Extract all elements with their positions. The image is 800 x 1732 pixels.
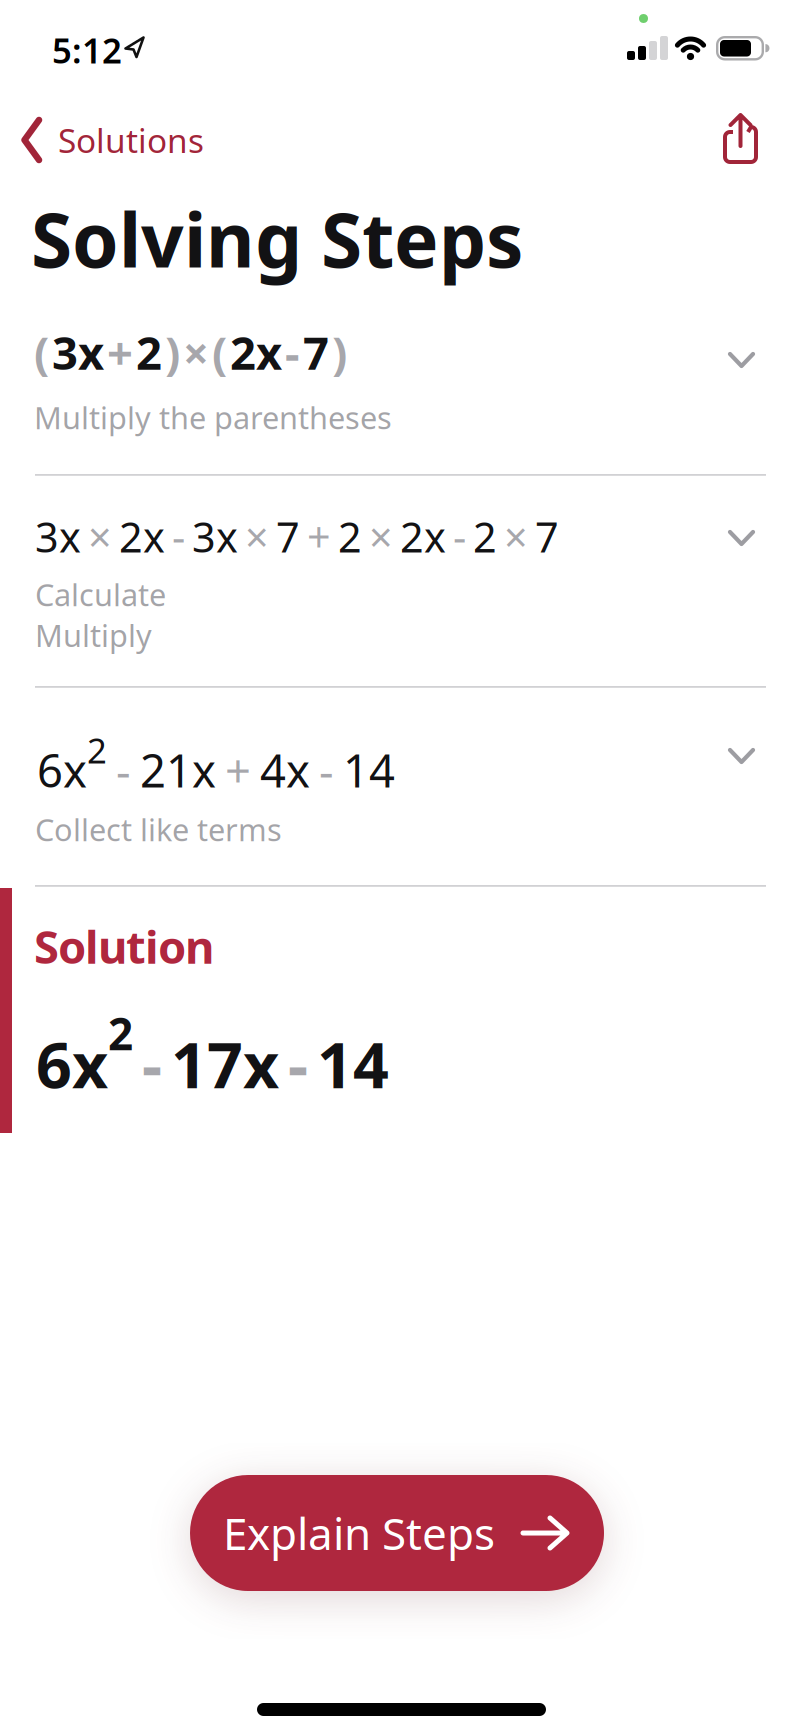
staticText: 21x <box>140 740 216 800</box>
staticText: 3x <box>52 322 104 382</box>
button[interactable]: Back to Solutions <box>21 117 204 163</box>
staticText: - <box>142 1022 162 1106</box>
button[interactable]: Expand step <box>728 352 755 368</box>
staticText: - <box>288 1022 308 1106</box>
button[interactable]: Explain Steps <box>190 1475 604 1591</box>
button[interactable]: Expand step <box>728 748 755 764</box>
staticText: 2 <box>473 509 497 564</box>
button[interactable]: Expand step <box>728 530 755 546</box>
staticText: Explain Steps <box>223 1504 495 1562</box>
staticText: × <box>88 509 112 564</box>
staticText: × <box>183 322 209 382</box>
staticText: 14 <box>343 740 395 800</box>
staticText: + <box>107 322 133 382</box>
staticText: 2x <box>400 509 446 564</box>
staticText: 3x <box>35 509 81 564</box>
staticText: × <box>504 509 528 564</box>
staticText: ( <box>212 322 227 382</box>
button[interactable]: Expand step 3x×2x-3x×7+2×2x-2×7 <box>35 509 559 564</box>
button[interactable]: Share <box>722 113 759 164</box>
staticText: 2 <box>136 322 162 382</box>
staticText: 4x <box>260 740 310 800</box>
staticText: 3x <box>192 509 238 564</box>
staticText: 6x2 <box>36 1004 133 1106</box>
staticText: Multiply the parentheses <box>34 397 392 438</box>
staticText: 7 <box>276 509 300 564</box>
staticText: - <box>319 740 334 800</box>
staticText: ( <box>34 322 49 382</box>
staticText: 7 <box>535 509 559 564</box>
staticText: 6x2 <box>37 727 107 800</box>
button[interactable]: Expand step 6x²-21x+4x-14 <box>37 727 395 800</box>
staticText: × <box>245 509 269 564</box>
staticText: ) <box>332 322 347 382</box>
staticText: Solving Steps <box>31 189 523 288</box>
staticText: 2x <box>230 322 282 382</box>
staticText: + <box>307 509 331 564</box>
staticText: - <box>116 740 131 800</box>
staticText: - <box>285 322 300 382</box>
staticText: Solutions <box>58 118 204 162</box>
staticText: 2x <box>119 509 165 564</box>
staticText: - <box>453 509 466 564</box>
staticText: Solution <box>34 916 214 976</box>
staticText: Collect like terms <box>35 809 282 850</box>
staticText: 7 <box>303 322 329 382</box>
staticText: 17x <box>171 1022 279 1106</box>
staticText: 2 <box>338 509 362 564</box>
staticText: + <box>225 740 251 800</box>
staticText: 5:12 <box>52 27 122 73</box>
button[interactable]: Expand step (3x+2)×(2x-7) <box>34 322 347 382</box>
staticText: 14 <box>317 1022 389 1106</box>
staticText: - <box>172 509 185 564</box>
staticText: Calculate <box>35 574 166 615</box>
staticText: × <box>369 509 393 564</box>
staticText: Multiply <box>35 615 152 655</box>
staticText: ) <box>165 322 180 382</box>
